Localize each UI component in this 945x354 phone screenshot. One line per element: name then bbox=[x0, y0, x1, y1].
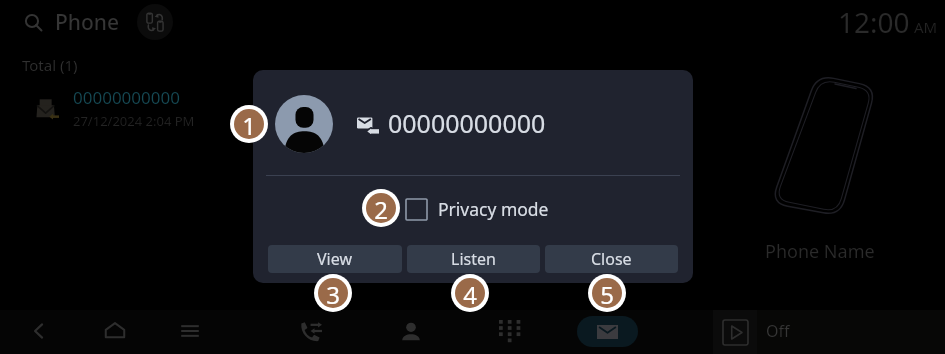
staticText: AM bbox=[914, 17, 938, 37]
staticText: 3 bbox=[326, 278, 340, 308]
button[interactable]: Search bbox=[15, 4, 51, 40]
button[interactable]: Contacts bbox=[389, 309, 433, 353]
staticText: Listen bbox=[451, 248, 496, 270]
staticText: Off bbox=[766, 320, 790, 342]
button[interactable]: Home bbox=[93, 309, 137, 353]
button[interactable]: Dialpad bbox=[488, 309, 532, 353]
staticText: 4 bbox=[463, 278, 477, 308]
button[interactable]: Back bbox=[17, 309, 61, 353]
staticText: 5 bbox=[600, 278, 614, 308]
staticText: 00000000000 bbox=[73, 86, 180, 109]
button[interactable]: Close bbox=[545, 245, 678, 273]
staticText: 12:00 bbox=[838, 3, 910, 41]
button[interactable]: Call log bbox=[289, 309, 333, 353]
button[interactable]: Media bbox=[713, 310, 945, 354]
staticText: Phone Name bbox=[765, 239, 875, 264]
button[interactable]: View bbox=[268, 245, 402, 273]
button[interactable]: Privacy mode bbox=[406, 191, 549, 227]
staticText: View bbox=[317, 248, 353, 270]
staticText: 1 bbox=[242, 109, 256, 139]
button[interactable]: Listen bbox=[407, 245, 540, 273]
button[interactable]: Messages bbox=[577, 316, 638, 347]
button[interactable]: Menu bbox=[168, 309, 212, 353]
button[interactable]: 00000000000 bbox=[14, 84, 264, 132]
staticText: 27/12/2024 2:04 PM bbox=[73, 112, 195, 130]
staticText: Privacy mode bbox=[438, 197, 549, 221]
staticText: 2 bbox=[374, 193, 388, 223]
staticText: Total (1) bbox=[22, 55, 78, 75]
staticText: Phone bbox=[55, 8, 120, 37]
button[interactable]: Switch device bbox=[137, 4, 173, 40]
staticText: Close bbox=[591, 248, 632, 270]
staticText: 00000000000 bbox=[388, 106, 546, 140]
